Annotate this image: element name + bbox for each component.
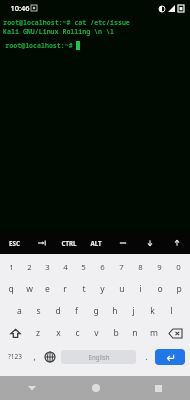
staticText: English [88, 353, 110, 361]
button[interactable]: Back [0, 376, 64, 400]
staticText: ALT [90, 239, 102, 247]
staticText: 4 [63, 262, 68, 273]
staticText: root@localhost:~# [3, 41, 75, 50]
button[interactable]: root@localhost:~# cat /etc/issue [0, 16, 190, 231]
button[interactable]: 0 [169, 256, 188, 278]
staticText: 2 [27, 262, 32, 273]
button[interactable]: 6 [93, 256, 112, 278]
staticText: 7 [119, 262, 124, 273]
staticText: 8 [138, 262, 143, 273]
button[interactable]: Arrow down [136, 231, 163, 254]
button[interactable]: ESC [0, 231, 28, 254]
button[interactable]: ?123 [3, 344, 27, 369]
staticText: x [56, 327, 61, 339]
button[interactable]: g [86, 300, 105, 322]
button[interactable]: 4 [56, 256, 74, 278]
staticText: w [26, 283, 33, 295]
button[interactable]: u [112, 278, 131, 300]
button[interactable]: d [48, 300, 67, 322]
staticText: ESC [9, 239, 20, 247]
button[interactable]: c [68, 322, 87, 344]
staticText: c [75, 327, 80, 339]
button[interactable]: English [61, 350, 136, 364]
staticText: g [93, 305, 99, 317]
staticText: s [36, 305, 41, 317]
staticText: v [94, 327, 99, 339]
button[interactable]: Tab [28, 231, 55, 254]
staticText: p [176, 283, 182, 295]
button[interactable]: y [93, 278, 112, 300]
button[interactable]: Shift [2, 322, 28, 344]
button[interactable]: 9 [150, 256, 169, 278]
button[interactable]: i [131, 278, 150, 300]
staticText: o [157, 283, 163, 295]
staticText: 6 [100, 262, 105, 273]
button[interactable]: Minus [109, 231, 136, 254]
button[interactable]: 2 [20, 256, 38, 278]
staticText: a [17, 305, 22, 317]
button[interactable]: n [125, 322, 144, 344]
button[interactable]: 8 [131, 256, 150, 278]
staticText: 10:46 [10, 3, 30, 13]
button[interactable]: Enter [155, 349, 185, 365]
staticText: ?123 [8, 352, 22, 361]
staticText: m [150, 327, 158, 339]
button[interactable]: w [20, 278, 38, 300]
button[interactable]: Change keyboard language [41, 344, 58, 369]
staticText: h [112, 305, 118, 317]
button[interactable]: e [38, 278, 56, 300]
staticText: k [150, 305, 155, 317]
button[interactable]: b [106, 322, 125, 344]
button[interactable]: l [162, 300, 181, 322]
button[interactable]: 1 [2, 256, 20, 278]
staticText: 0 [176, 262, 181, 273]
button[interactable]: t [74, 278, 93, 300]
button[interactable]: s [29, 300, 48, 322]
staticText: t [82, 283, 86, 295]
button[interactable]: . [139, 344, 153, 369]
button[interactable]: Arrow up [163, 231, 190, 254]
staticText: CTRL [61, 239, 77, 247]
staticText: 5 [81, 262, 86, 273]
button[interactable]: p [169, 278, 188, 300]
button[interactable]: , [27, 344, 41, 369]
button[interactable]: CTRL [55, 231, 82, 254]
button[interactable]: x [48, 322, 68, 344]
staticText: 9 [157, 262, 162, 273]
staticText: j [132, 305, 135, 317]
button[interactable]: q [2, 278, 20, 300]
button[interactable]: k [143, 300, 162, 322]
button[interactable]: h [105, 300, 124, 322]
button[interactable]: 3 [38, 256, 56, 278]
staticText: u [119, 283, 125, 295]
button[interactable]: m [144, 322, 163, 344]
button[interactable]: Home [64, 376, 127, 400]
staticText: . [145, 351, 148, 362]
button[interactable]: o [150, 278, 169, 300]
staticText: b [113, 327, 119, 339]
staticText: 3 [45, 262, 50, 273]
staticText: f [75, 305, 78, 317]
staticText: l [170, 305, 173, 317]
staticText: , [33, 351, 36, 362]
staticText: Kali GNU/Linux Rolling \n \l [3, 27, 114, 36]
staticText: r [63, 283, 67, 295]
staticText: i [139, 283, 142, 295]
button[interactable]: z [28, 322, 48, 344]
staticText: e [45, 283, 50, 295]
staticText: d [55, 305, 61, 317]
staticText: z [36, 327, 40, 339]
button[interactable]: v [87, 322, 106, 344]
staticText: y [100, 283, 105, 295]
staticText: q [8, 283, 14, 295]
button[interactable]: 7 [112, 256, 131, 278]
button[interactable]: a [9, 300, 29, 322]
button[interactable]: Backspace [163, 322, 188, 344]
button[interactable]: 5 [74, 256, 93, 278]
button[interactable]: Recents [127, 376, 190, 400]
button[interactable]: r [56, 278, 74, 300]
button[interactable]: j [124, 300, 143, 322]
staticText: n [132, 327, 138, 339]
button[interactable]: ALT [82, 231, 109, 254]
button[interactable]: f [67, 300, 86, 322]
